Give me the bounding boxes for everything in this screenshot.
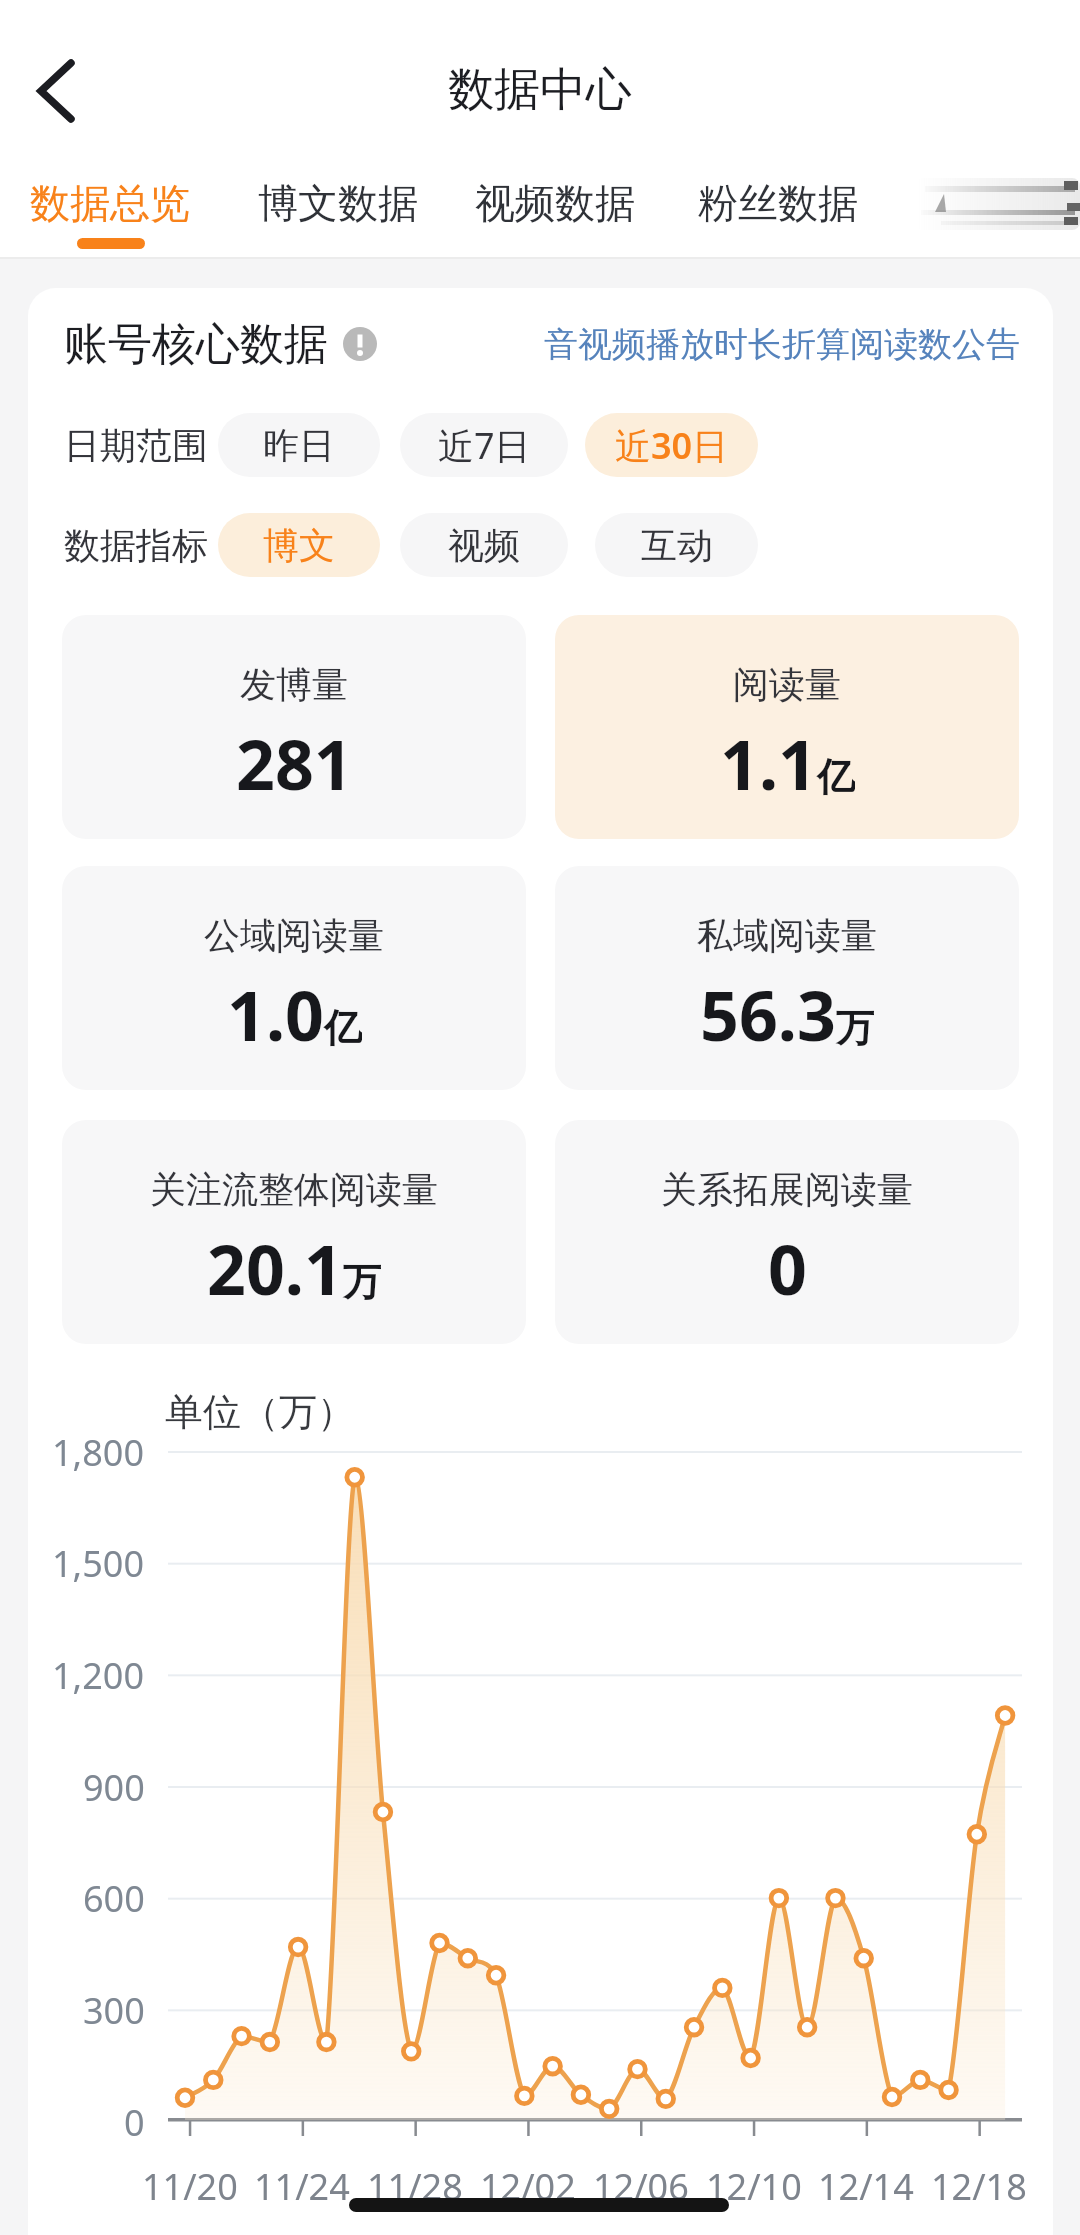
staticText: 视频数据: [475, 178, 635, 226]
staticText: 12/10: [706, 2162, 802, 2210]
staticText: 300: [83, 1986, 145, 2034]
staticText: 日期范围: [64, 423, 208, 468]
staticText: 公域阅读量: [204, 913, 384, 958]
staticText: 600: [83, 1874, 145, 1922]
button[interactable]: 音视频播放时长折算阅读数公告: [440, 320, 1020, 368]
staticText: 视频: [448, 523, 520, 568]
button[interactable]: 博文: [218, 513, 380, 577]
staticText: 博文数据: [258, 178, 418, 226]
staticText: 56.3万: [700, 968, 874, 1052]
staticText: 粉丝数据: [698, 178, 858, 226]
staticText: 11/28: [367, 2162, 463, 2210]
staticText: 账号核心数据: [64, 317, 328, 372]
staticText: 数据指标: [64, 523, 208, 568]
button[interactable]: 阅读量: [555, 615, 1019, 839]
button[interactable]: 关系拓展阅读量: [555, 1120, 1019, 1344]
staticText: 12/06: [593, 2162, 689, 2210]
staticText: 0: [124, 2098, 145, 2146]
staticText: 单位（万）: [165, 1388, 355, 1436]
staticText: 12/14: [818, 2162, 914, 2210]
staticText: 20.1万: [207, 1222, 381, 1306]
button[interactable]: 粉丝数据: [698, 178, 858, 226]
staticText: 900: [83, 1763, 145, 1811]
staticText: 数据中心: [448, 61, 632, 119]
staticText: 私域阅读量: [697, 913, 877, 958]
staticText: 发博量: [240, 662, 348, 707]
staticText: 近7日: [438, 421, 531, 470]
staticText: 1,500: [52, 1539, 145, 1587]
button[interactable]: 公域阅读量: [62, 866, 526, 1090]
button[interactable]: 博文数据: [258, 178, 418, 226]
staticText: 博文: [263, 523, 335, 568]
button[interactable]: 近30日: [585, 413, 758, 477]
staticText: 关注流整体阅读量: [150, 1167, 438, 1212]
staticText: 1,200: [52, 1651, 145, 1699]
button[interactable]: 私域阅读量: [555, 866, 1019, 1090]
staticText: 11/20: [142, 2162, 238, 2210]
button[interactable]: 近7日: [400, 413, 568, 477]
staticText: 互动: [641, 523, 713, 568]
staticText: 关系拓展阅读量: [661, 1167, 913, 1212]
staticText: 1.0亿: [227, 968, 362, 1052]
staticText: 0: [768, 1222, 807, 1306]
staticText: 近30日: [615, 421, 729, 470]
button[interactable]: 互动: [595, 513, 758, 577]
staticText: 音视频播放时长折算阅读数公告: [544, 323, 1020, 366]
button[interactable]: 视频数据: [475, 178, 635, 226]
button[interactable]: 数据总览: [30, 178, 190, 226]
staticText: 12/02: [480, 2162, 576, 2210]
button[interactable]: 昨日: [218, 413, 380, 477]
button[interactable]: 发博量: [62, 615, 526, 839]
staticText: 阅读量: [733, 662, 841, 707]
staticText: 数据总览: [30, 178, 190, 226]
staticText: 1,800: [52, 1428, 145, 1476]
staticText: 281: [236, 717, 353, 801]
button[interactable]: [20, 50, 100, 130]
staticText: 昨日: [263, 423, 335, 468]
staticText: 11/24: [254, 2162, 350, 2210]
button[interactable]: 关注流整体阅读量: [62, 1120, 526, 1344]
staticText: 12/18: [931, 2162, 1027, 2210]
staticText: 1.1亿: [720, 717, 855, 801]
button[interactable]: 视频: [400, 513, 568, 577]
